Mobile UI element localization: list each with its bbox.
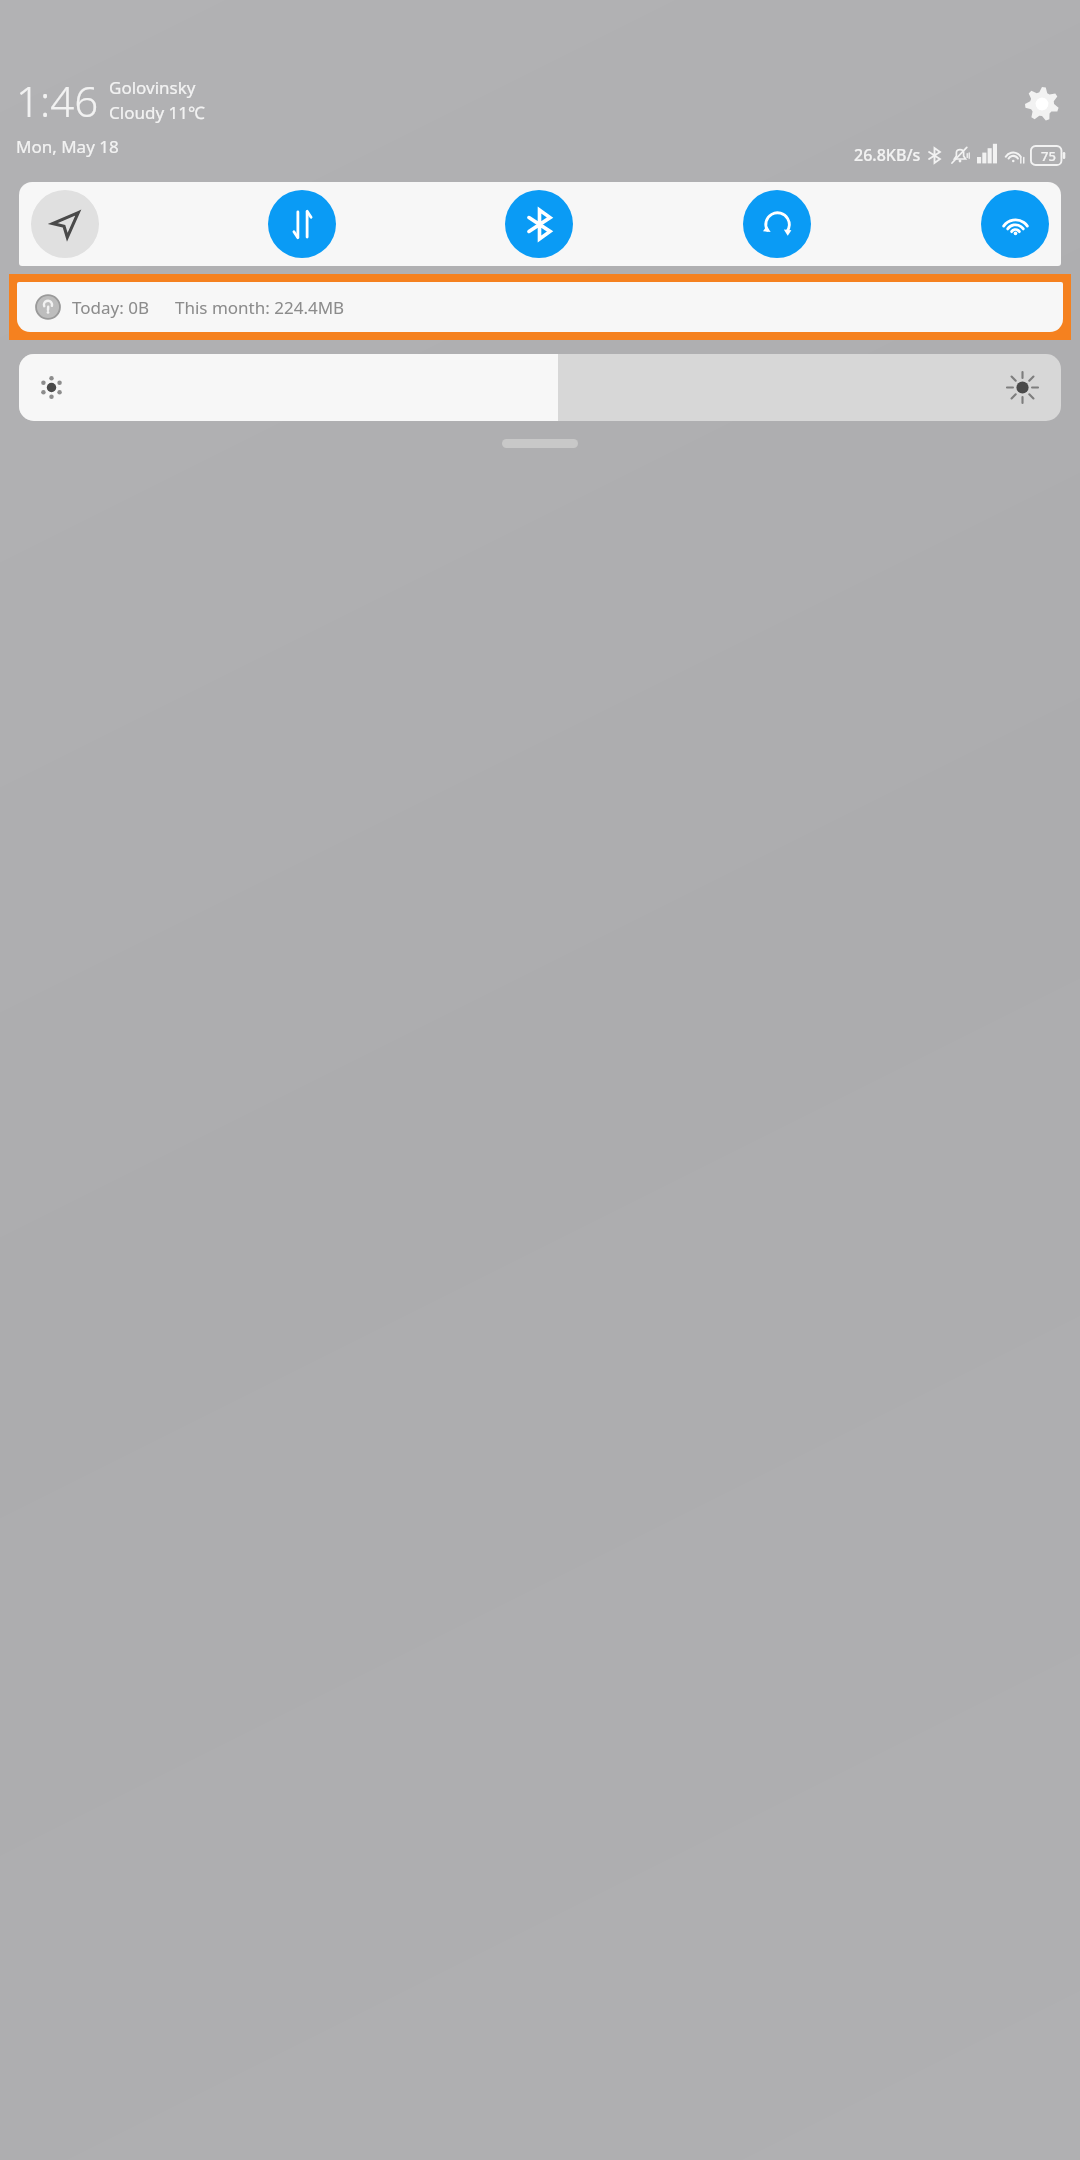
- button[interactable]: Settings: [1020, 82, 1064, 126]
- button[interactable]: Expand: [502, 439, 578, 448]
- button[interactable]: Auto sync: [743, 190, 811, 258]
- button[interactable]: Today: 0B: [17, 282, 1063, 332]
- staticText: Mon, May 18: [16, 135, 119, 158]
- staticText: Today: 0B: [72, 296, 149, 319]
- staticText: This month: 224.4MB: [175, 296, 345, 319]
- button[interactable]: Bluetooth: [505, 190, 573, 258]
- staticText: 1:46: [16, 72, 99, 129]
- button[interactable]: Wi-Fi: [981, 190, 1049, 258]
- staticText: 26.8KB/s: [854, 144, 921, 166]
- button[interactable]: Mobile data: [268, 190, 336, 258]
- staticText: Golovinsky: [109, 76, 196, 99]
- button[interactable]: Brightness: [19, 354, 1061, 421]
- button[interactable]: Location: [31, 190, 99, 258]
- staticText: Cloudy 11℃: [109, 101, 205, 124]
- staticText: 75: [1041, 147, 1056, 165]
